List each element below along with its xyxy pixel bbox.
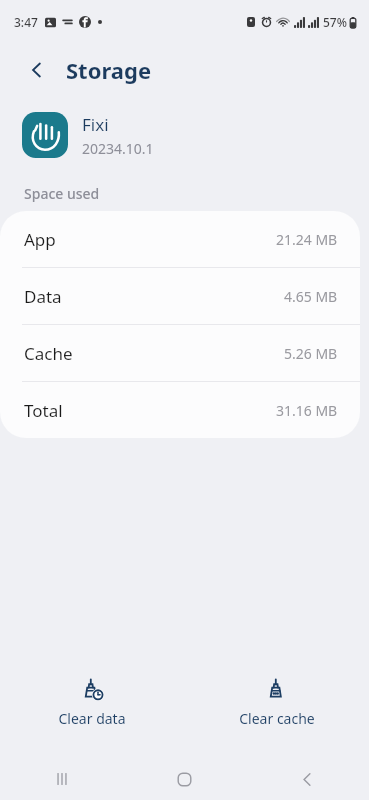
button[interactable]: App <box>0 211 360 268</box>
button[interactable]: Total <box>0 382 360 438</box>
staticText: App <box>24 228 56 251</box>
staticText: 21.24 MB <box>276 230 338 249</box>
staticText: Fixi <box>82 113 109 136</box>
staticText: Data <box>24 285 62 308</box>
staticText: 5.26 MB <box>284 344 338 363</box>
button[interactable]: Recent apps <box>0 758 123 800</box>
staticText: Cache <box>24 342 73 365</box>
button[interactable]: Back <box>20 53 54 87</box>
staticText: 4.65 MB <box>284 287 338 306</box>
staticText: 3:47 <box>14 14 38 30</box>
button[interactable]: Home <box>123 758 246 800</box>
button[interactable]: Clear cache <box>184 672 369 734</box>
staticText: 31.16 MB <box>276 401 338 420</box>
staticText: Storage <box>66 55 152 85</box>
button[interactable]: Cache <box>0 325 360 382</box>
staticText: Space used <box>24 184 100 203</box>
staticText: 20234.10.1 <box>82 139 154 158</box>
staticText: Total <box>24 399 63 422</box>
staticText: Clear data <box>58 709 126 728</box>
button[interactable]: Back <box>246 758 369 800</box>
staticText: Clear cache <box>239 709 315 728</box>
staticText: 57% <box>323 14 347 30</box>
button[interactable]: Data <box>0 268 360 325</box>
button[interactable]: Clear data <box>0 672 184 734</box>
